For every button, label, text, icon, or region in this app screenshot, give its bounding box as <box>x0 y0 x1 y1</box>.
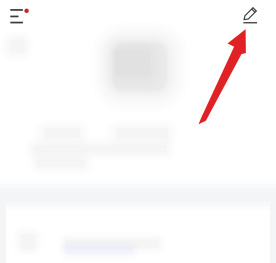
button[interactable]: Compose <box>237 0 267 30</box>
button[interactable]: Menu <box>9 0 41 30</box>
